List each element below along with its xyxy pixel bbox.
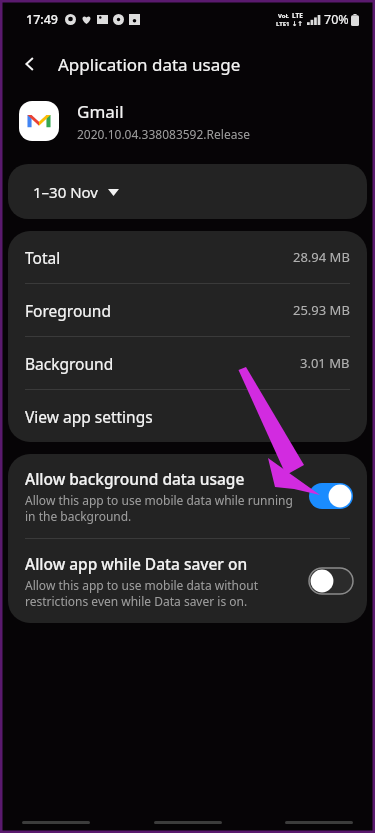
button[interactable]: Back	[10, 44, 50, 84]
button[interactable]: Navigation button	[154, 821, 222, 824]
staticText: VoŁ	[278, 12, 289, 20]
staticText: Allow background data usage	[25, 468, 245, 489]
staticText: ↓↑	[292, 20, 303, 28]
staticText: Foreground	[25, 300, 111, 321]
button[interactable]: Navigation button	[22, 821, 90, 824]
button[interactable]: Gmail	[0, 90, 375, 152]
button[interactable]: Allow app while Data saver on	[8, 539, 367, 623]
staticText: 25.93 MB	[293, 301, 350, 319]
button[interactable]: Background	[8, 337, 367, 389]
button[interactable]: Allow background data usage	[8, 454, 367, 538]
staticText: 3.01 MB	[300, 354, 350, 372]
button[interactable]: Toggle off	[309, 568, 353, 594]
staticText: Total	[25, 247, 61, 268]
staticText: Application data usage	[58, 53, 241, 76]
staticText: Allow app while Data saver on	[25, 553, 248, 574]
staticText: View app settings	[25, 406, 153, 427]
button[interactable]: View app settings	[8, 390, 367, 442]
button[interactable]: 1–30 Nov	[8, 164, 367, 219]
staticText: 2020.10.04.338083592.Release	[77, 126, 250, 142]
staticText: Gmail	[77, 100, 124, 123]
staticText: Allow this app to use mobile data while …	[25, 492, 293, 524]
staticText: 17:49	[26, 11, 59, 28]
staticText: 70%	[324, 11, 349, 28]
button[interactable]: Navigation button	[285, 821, 353, 824]
button[interactable]: Foreground	[8, 284, 367, 336]
button[interactable]: Toggle on	[309, 483, 353, 509]
staticText: Background	[25, 353, 114, 374]
staticText: Allow this app to use mobile data withou…	[25, 577, 259, 609]
staticText: LTE1	[276, 20, 290, 28]
staticText: LTE	[292, 11, 303, 20]
button[interactable]: Total	[8, 231, 367, 283]
staticText: 28.94 MB	[293, 248, 350, 266]
staticText: 1–30 Nov	[33, 182, 98, 202]
